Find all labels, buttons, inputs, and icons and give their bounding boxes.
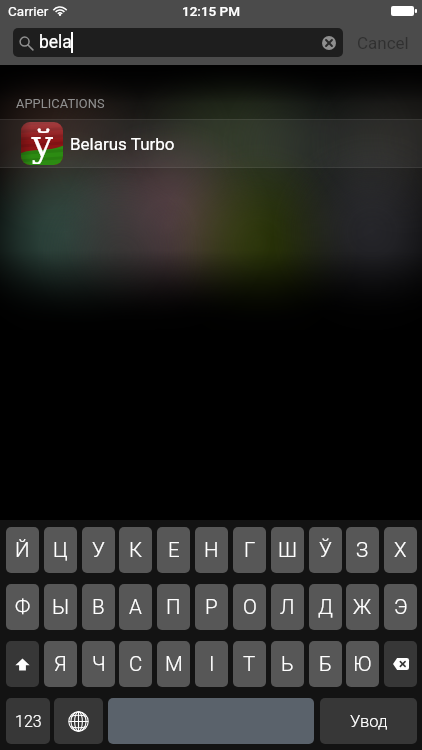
staticText: Ч — [92, 652, 106, 676]
button[interactable]: Ш — [271, 527, 304, 573]
staticText: Ф — [15, 595, 31, 619]
button[interactable]: Р — [195, 584, 228, 630]
staticText: Э — [394, 595, 408, 619]
button[interactable]: Shift — [6, 641, 39, 687]
button[interactable]: Б — [309, 641, 342, 687]
staticText: Ш — [278, 538, 297, 562]
staticText: Н — [204, 538, 219, 562]
button[interactable]: Д — [309, 584, 342, 630]
button[interactable]: Ж — [346, 584, 379, 630]
staticText: Ў — [319, 538, 332, 562]
button[interactable]: П — [157, 584, 190, 630]
staticText: Я — [54, 652, 67, 676]
staticText: Д — [318, 595, 333, 619]
button[interactable]: Х — [384, 527, 417, 573]
button[interactable]: Backspace — [384, 641, 417, 687]
button[interactable]: Ы — [44, 584, 77, 630]
staticText: Г — [244, 538, 256, 562]
staticText: В — [92, 595, 105, 619]
staticText: Л — [280, 595, 295, 619]
staticText: А — [129, 595, 142, 619]
staticText: Belarus Turbo — [70, 134, 175, 154]
button[interactable]: В — [82, 584, 115, 630]
button[interactable]: Й — [6, 527, 39, 573]
staticText: І — [209, 652, 215, 676]
staticText: ў — [31, 122, 54, 164]
button[interactable]: Ў — [309, 527, 342, 573]
button[interactable]: С — [119, 641, 152, 687]
button[interactable]: bela — [13, 28, 343, 57]
button[interactable]: Я — [44, 641, 77, 687]
button[interactable]: 123 — [6, 698, 50, 744]
button[interactable]: Э — [384, 584, 417, 630]
staticText: Увод — [350, 712, 388, 731]
staticText: Х — [394, 538, 407, 562]
staticText: Carrier — [8, 3, 49, 19]
button[interactable]: Ч — [82, 641, 115, 687]
staticText: bela — [39, 32, 72, 53]
button[interactable]: Г — [233, 527, 266, 573]
button[interactable]: Т — [233, 641, 266, 687]
staticText: О — [243, 595, 257, 619]
staticText: П — [166, 595, 181, 619]
staticText: Т — [243, 652, 256, 676]
button[interactable]: З — [346, 527, 379, 573]
staticText: М — [165, 652, 183, 676]
staticText: Й — [15, 538, 30, 562]
button[interactable]: Ь — [271, 641, 304, 687]
staticText: З — [356, 538, 369, 562]
staticText: Ж — [353, 595, 372, 619]
button[interactable]: Space — [108, 698, 314, 744]
staticText: Е — [168, 538, 180, 562]
button[interactable]: Change keyboard — [54, 698, 103, 744]
button[interactable]: Е — [157, 527, 190, 573]
staticText: Ю — [353, 652, 372, 676]
staticText: 12:15 PM — [182, 3, 241, 19]
button[interactable]: Cancel — [352, 28, 414, 57]
staticText: 123 — [15, 712, 42, 731]
button[interactable]: М — [157, 641, 190, 687]
staticText: Ц — [53, 538, 68, 562]
staticText: Ы — [52, 595, 70, 619]
staticText: Ь — [281, 652, 294, 676]
button[interactable]: Л — [271, 584, 304, 630]
button[interactable]: Ц — [44, 527, 77, 573]
button[interactable]: К — [119, 527, 152, 573]
staticText: Cancel — [357, 33, 409, 53]
button[interactable]: Ф — [6, 584, 39, 630]
button[interactable]: ў — [0, 120, 422, 167]
button[interactable]: Clear search — [317, 31, 341, 55]
button[interactable]: Ю — [346, 641, 379, 687]
button[interactable]: Н — [195, 527, 228, 573]
button[interactable]: Увод — [320, 698, 417, 744]
button[interactable]: І — [195, 641, 228, 687]
staticText: Р — [205, 595, 218, 619]
staticText: Б — [319, 652, 332, 676]
button[interactable]: У — [82, 527, 115, 573]
button[interactable]: О — [233, 584, 266, 630]
staticText: С — [129, 652, 143, 676]
staticText: APPLICATIONS — [16, 96, 105, 111]
staticText: У — [92, 538, 105, 562]
button[interactable]: А — [119, 584, 152, 630]
staticText: К — [129, 538, 143, 562]
